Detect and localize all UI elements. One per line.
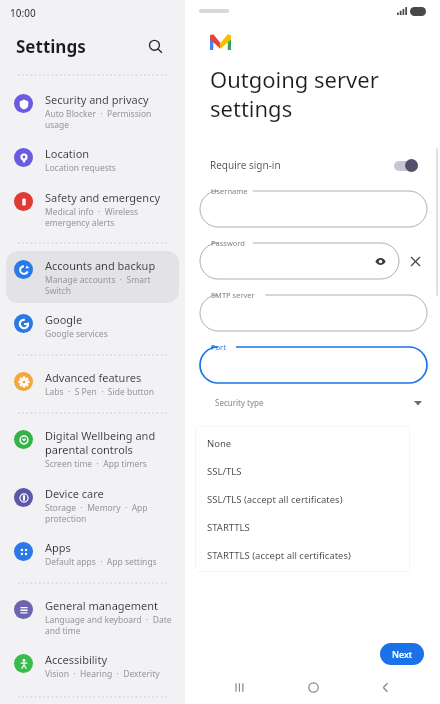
button[interactable]: SSL/TLS (accept all certificates) xyxy=(195,485,410,513)
staticText: Outgoing server settings xyxy=(210,64,379,123)
staticText: Medical info · Wireless emergency alerts xyxy=(45,206,173,228)
button[interactable]: Clear password xyxy=(406,252,424,270)
button[interactable]: Show password xyxy=(371,252,389,270)
staticText: Google services xyxy=(45,328,108,340)
button[interactable]: Security and privacy xyxy=(6,85,179,137)
staticText: Google xyxy=(45,312,83,327)
staticText: Storage · Memory · App protection xyxy=(45,502,173,524)
staticText: Digital Wellbeing and parental controls xyxy=(45,428,173,457)
staticText: Security and privacy xyxy=(45,92,149,107)
staticText: Labs · S Pen · Side button xyxy=(45,386,154,398)
staticText: Vision · Hearing · Dexterity xyxy=(45,668,160,680)
staticText: SSL/TLS (accept all certificates) xyxy=(207,493,343,506)
button[interactable]: SSL/TLS xyxy=(195,457,410,485)
button[interactable]: Search settings xyxy=(141,32,169,60)
button[interactable]: Back xyxy=(368,670,402,704)
button[interactable]: Device care xyxy=(6,479,179,531)
button[interactable]: Digital Wellbeing and parental controls xyxy=(6,421,179,477)
button[interactable]: STARTTLS xyxy=(195,513,410,541)
staticText: Language and keyboard · Date and time xyxy=(45,614,173,636)
staticText: Default apps · App settings xyxy=(45,556,157,568)
staticText: Security type xyxy=(215,397,264,408)
staticText: Screen time · App timers xyxy=(45,458,147,470)
button[interactable]: Safety and emergency xyxy=(6,183,179,235)
staticText: Advanced features xyxy=(45,370,142,385)
staticText: Username xyxy=(211,186,248,196)
staticText: None xyxy=(207,437,232,450)
button[interactable]: Recent apps xyxy=(223,670,257,704)
staticText: Location requests xyxy=(45,162,116,174)
staticText: General management xyxy=(45,598,159,613)
button[interactable]: Accounts and backup xyxy=(6,251,179,303)
staticText: Port xyxy=(211,342,226,352)
staticText: Settings xyxy=(16,35,86,58)
staticText: SMTP server xyxy=(211,290,255,300)
button[interactable]: Apps xyxy=(6,533,179,575)
staticText: Next xyxy=(392,648,413,660)
staticText: Password xyxy=(211,238,245,248)
button[interactable]: Google xyxy=(6,305,179,347)
button[interactable]: Next xyxy=(380,643,424,665)
button[interactable]: Require sign-in xyxy=(185,153,440,177)
staticText: Manage accounts · Smart Switch xyxy=(45,274,173,296)
staticText: Safety and emergency xyxy=(45,190,161,205)
button[interactable]: Require sign-in toggle xyxy=(394,159,418,172)
staticText: SSL/TLS xyxy=(207,465,242,478)
staticText: Apps xyxy=(45,540,71,555)
staticText: Device care xyxy=(45,486,104,501)
button[interactable]: Home xyxy=(296,670,330,704)
staticText: STARTTLS xyxy=(207,521,250,534)
button[interactable]: General management xyxy=(6,591,179,643)
staticText: Auto Blocker · Permission usage xyxy=(45,108,173,130)
staticText: 10:00 xyxy=(10,6,36,20)
button[interactable]: STARTTLS (accept all certificates) xyxy=(195,541,410,569)
button[interactable]: Location xyxy=(6,139,179,181)
staticText: STARTTLS (accept all certificates) xyxy=(207,549,351,562)
button[interactable]: Advanced features xyxy=(6,363,179,405)
button[interactable]: Accessibility xyxy=(6,645,179,687)
staticText: Require sign-in xyxy=(210,158,281,172)
staticText: Accessibility xyxy=(45,652,108,667)
staticText: Location xyxy=(45,146,90,161)
staticText: Accounts and backup xyxy=(45,258,156,273)
button[interactable]: None xyxy=(195,429,410,457)
